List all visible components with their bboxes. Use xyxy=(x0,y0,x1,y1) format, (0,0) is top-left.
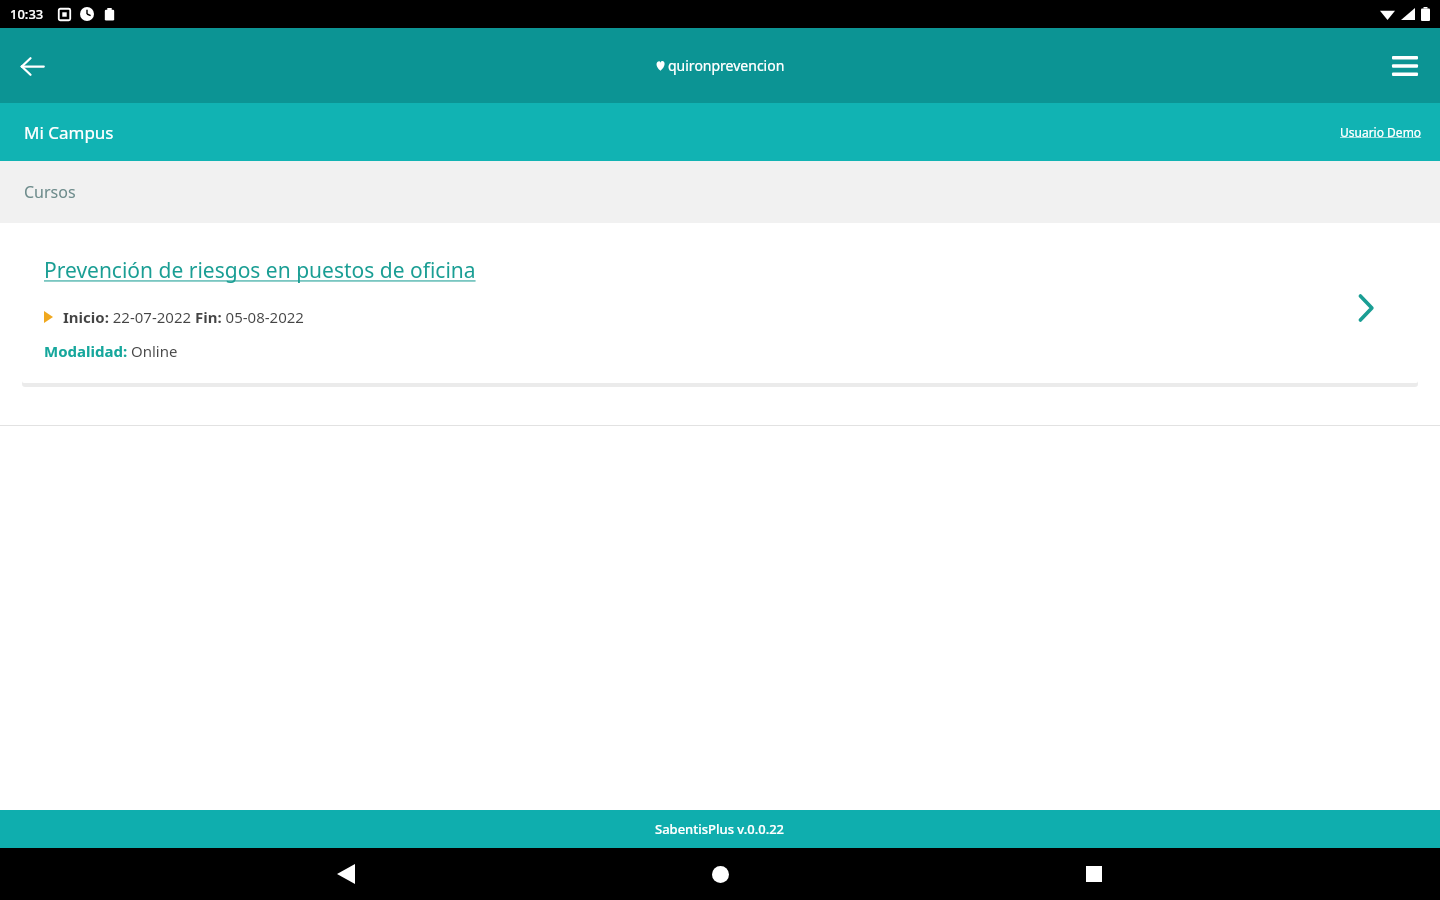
button[interactable]: Cursos xyxy=(20,177,80,207)
button[interactable]: Recent apps xyxy=(1066,848,1122,900)
button[interactable]: Prevención de riesgos en puestos de ofic… xyxy=(22,233,1418,383)
button[interactable]: Open course xyxy=(1344,286,1388,330)
staticText: Modalidad: Online xyxy=(44,341,178,361)
button[interactable]: Menu xyxy=(1378,39,1432,93)
staticText: Inicio: 22-07-2022 Fin: 05-08-2022 xyxy=(63,307,304,327)
staticText: quironprevencion xyxy=(668,56,785,75)
staticText: Mi Campus xyxy=(24,121,114,144)
staticText: Usuario Demo xyxy=(1340,124,1422,140)
button[interactable]: Back xyxy=(318,848,374,900)
staticText: 10:33 xyxy=(10,5,44,23)
button[interactable]: Home xyxy=(692,848,748,900)
button[interactable]: Back xyxy=(6,40,58,92)
staticText: Cursos xyxy=(24,181,76,203)
button[interactable]: Usuario Demo xyxy=(1336,118,1426,146)
staticText: SabentisPlus v.0.0.22 xyxy=(655,820,785,838)
staticText: Prevención de riesgos en puestos de ofic… xyxy=(44,256,476,285)
